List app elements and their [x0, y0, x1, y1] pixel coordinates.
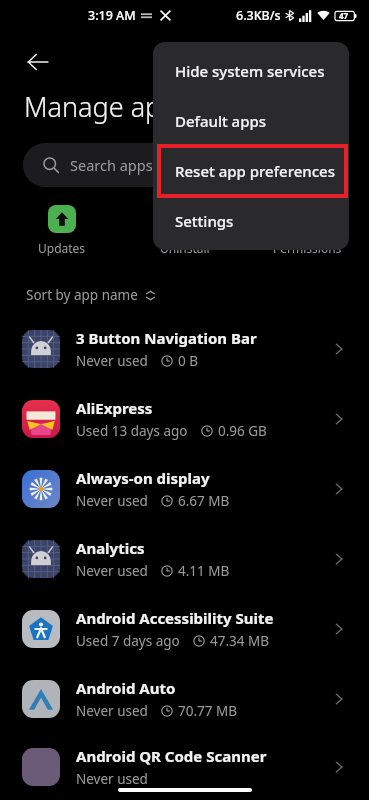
button[interactable]: Updates: [0, 201, 123, 260]
staticText: AliExpress: [76, 398, 153, 418]
staticText: Updates: [38, 240, 86, 256]
staticText: Always-on display: [76, 468, 210, 488]
button[interactable]: Analytics: [0, 524, 369, 594]
staticText: Default apps: [175, 111, 267, 131]
staticText: Android QR Code Scanner: [76, 746, 267, 766]
button[interactable]: 3 Button Navigation Bar: [0, 314, 369, 384]
staticText: Android Auto: [76, 678, 176, 698]
staticText: 0 B: [178, 352, 199, 370]
staticText: Used 13 days ago: [76, 422, 188, 440]
staticText: Search apps: [70, 155, 153, 175]
staticText: 4.11 MB: [178, 562, 230, 580]
staticText: Manage apps: [24, 88, 191, 125]
staticText: 3 Button Navigation Bar: [76, 328, 257, 348]
staticText: 6.3KB/s: [236, 7, 281, 24]
staticText: Hide system services: [175, 61, 325, 81]
button[interactable]: Settings: [153, 196, 349, 246]
staticText: 47: [339, 10, 349, 21]
staticText: Permissions: [273, 240, 342, 256]
staticText: Sort by app name: [26, 286, 138, 304]
staticText: Settings: [175, 211, 234, 231]
staticText: Never used: [76, 562, 148, 580]
button[interactable]: Reset app preferences: [153, 146, 349, 196]
button[interactable]: Android Accessibility Suite: [0, 594, 369, 664]
staticText: Never used: [76, 770, 148, 788]
button[interactable]: Sort by app name: [22, 280, 160, 310]
staticText: 3:19 AM: [88, 7, 136, 24]
staticText: 70.77 MB: [178, 702, 238, 720]
staticText: Never used: [76, 702, 148, 720]
staticText: Never used: [76, 352, 148, 370]
staticText: Used 7 days ago: [76, 632, 180, 650]
staticText: Uninstall: [160, 240, 210, 256]
staticText: Android Accessibility Suite: [76, 608, 274, 628]
staticText: Analytics: [76, 538, 145, 558]
staticText: 0.96 GB: [218, 422, 267, 440]
button[interactable]: Default apps: [153, 96, 349, 146]
button[interactable]: Android QR Code Scanner: [0, 734, 369, 800]
staticText: Never used: [76, 492, 148, 510]
button[interactable]: Back: [14, 38, 62, 86]
button[interactable]: AliExpress: [0, 384, 369, 454]
button[interactable]: Permissions: [246, 201, 369, 260]
button[interactable]: Android Auto: [0, 664, 369, 734]
staticText: Reset app preferences: [175, 161, 335, 181]
button[interactable]: Hide system services: [153, 46, 349, 96]
staticText: 6.67 MB: [178, 492, 230, 510]
button[interactable]: Uninstall: [123, 201, 246, 260]
staticText: 47.34 MB: [210, 632, 270, 650]
button[interactable]: Always-on display: [0, 454, 369, 524]
button[interactable]: Search apps: [23, 143, 346, 187]
